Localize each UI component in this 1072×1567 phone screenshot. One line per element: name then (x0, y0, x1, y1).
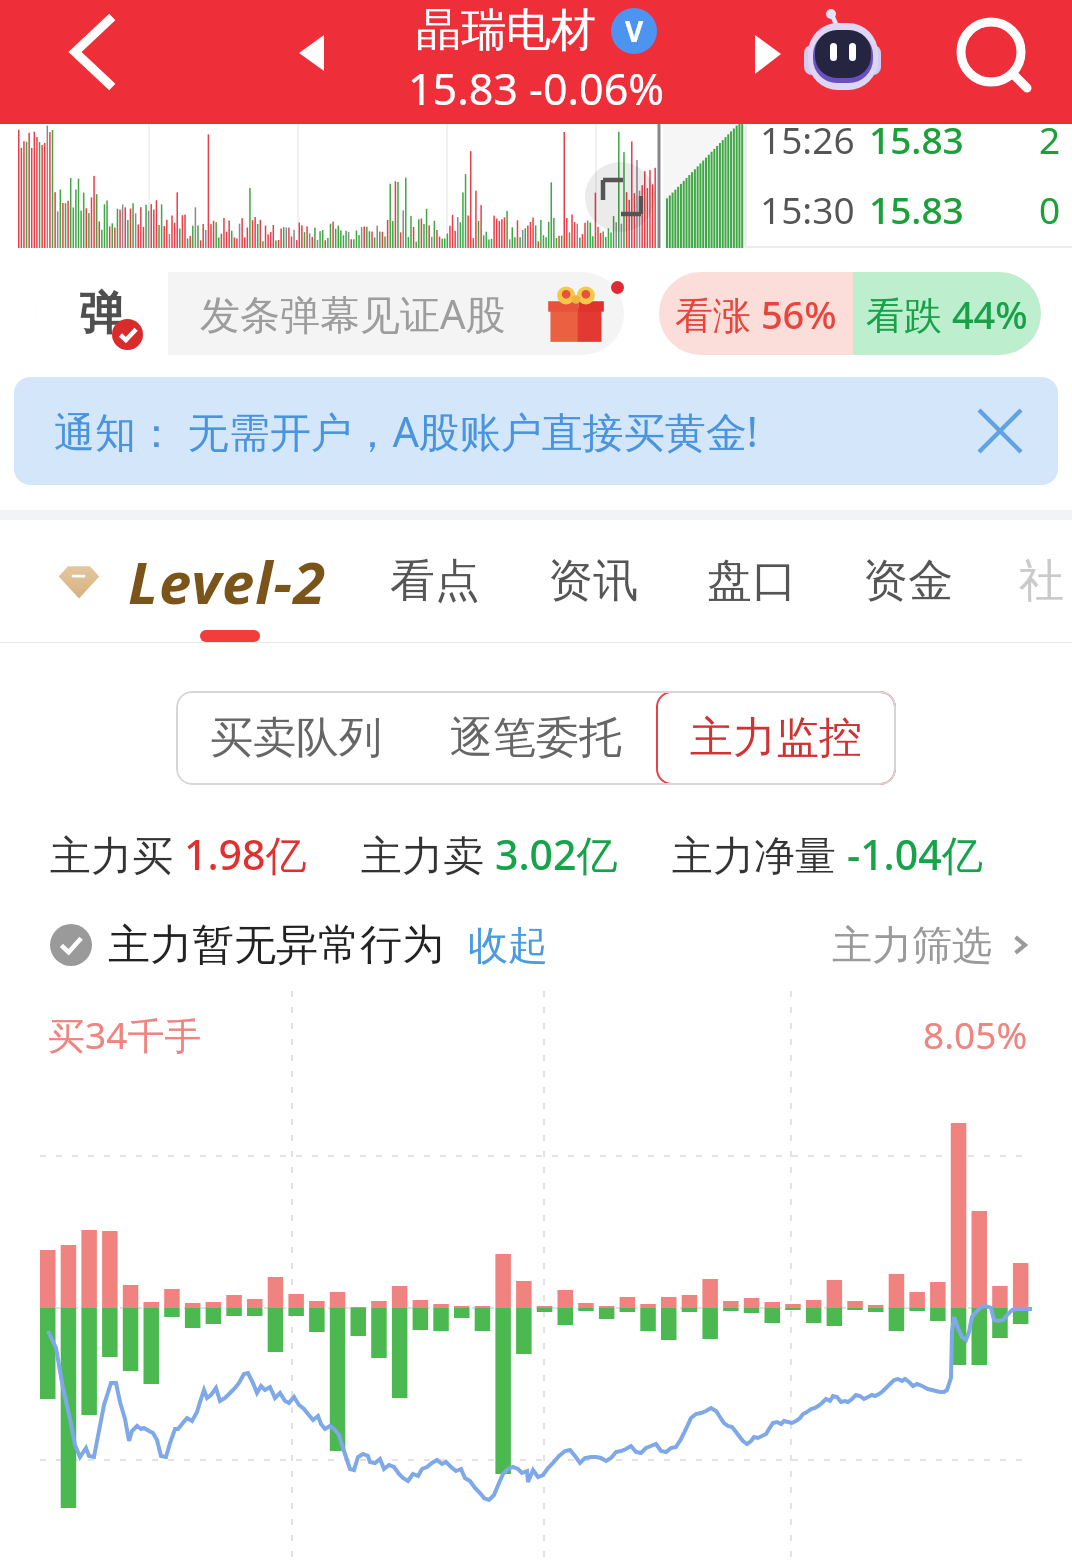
staticText: 主力监控 (690, 711, 862, 765)
staticText: 看跌 44% (866, 288, 1028, 340)
button[interactable]: 买卖队列 (176, 691, 416, 785)
button[interactable]: 主力监控 (656, 691, 896, 785)
button[interactable]: 资讯 (548, 553, 638, 610)
button[interactable]: Next stock (724, 10, 812, 98)
staticText: 0 (1039, 184, 1061, 234)
staticText: 主力暂无异常行为 (108, 919, 444, 972)
staticText: 15.83 (869, 184, 964, 234)
button[interactable]: 社 (1019, 553, 1064, 610)
staticText: 主力筛选 (832, 920, 992, 970)
staticText: V (625, 12, 644, 50)
staticText: 1.98亿 (184, 826, 307, 882)
button[interactable]: Level-2 (56, 542, 327, 621)
button[interactable]: AI assistant (799, 5, 894, 100)
staticText: 通知： 无需开户，A股账户直接买黄金! (54, 403, 758, 459)
button[interactable]: 看涨 56% (659, 272, 1041, 355)
staticText: 主力净量 (672, 826, 847, 882)
staticText: Level-2 (128, 542, 327, 621)
staticText: 15.83 -0.06% (408, 59, 664, 118)
staticText: 8.05% (923, 1009, 1028, 1059)
button[interactable]: 盘口 (707, 553, 797, 610)
button[interactable]: 收起 (468, 920, 548, 970)
staticText: 发条弹幕见证A股 (200, 286, 506, 341)
staticText: 15:26 (760, 114, 855, 164)
staticText: 晶瑞电材 (416, 2, 596, 59)
button[interactable]: 通知： 无需开户，A股账户直接买黄金! (14, 377, 1058, 485)
staticText: 买卖队列 (210, 711, 382, 765)
staticText: -1.04亿 (847, 826, 983, 882)
button[interactable]: 弹 (36, 272, 624, 355)
staticText: 逐笔委托 (450, 711, 622, 765)
staticText: 3.02亿 (495, 826, 618, 882)
button[interactable]: 主力筛选 (832, 920, 1034, 970)
button[interactable]: Fullscreen (585, 162, 655, 232)
staticText: 2 (1039, 114, 1061, 164)
button[interactable]: Search (945, 6, 1037, 98)
staticText: 15.83 (869, 114, 964, 164)
button[interactable]: Back (46, 6, 138, 98)
button[interactable]: Close notice (970, 401, 1030, 461)
button[interactable]: 逐笔委托 (416, 691, 656, 785)
button[interactable]: 资金 (863, 553, 953, 610)
staticText: 主力买 (50, 826, 184, 882)
staticText: 看涨 56% (675, 288, 837, 340)
staticText: 弹 (79, 285, 125, 343)
staticText: 主力卖 (361, 826, 495, 882)
staticText: 15:30 (760, 184, 855, 234)
button[interactable]: Previous stock (267, 9, 355, 97)
button[interactable]: 看点 (390, 553, 480, 610)
staticText: 买34千手 (48, 1009, 202, 1060)
